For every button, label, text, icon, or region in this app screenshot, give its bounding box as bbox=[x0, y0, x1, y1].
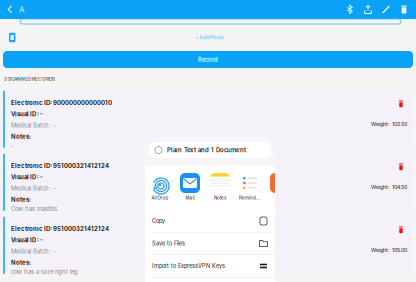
button[interactable]: Record bbox=[3, 51, 413, 68]
staticText: Notes bbox=[214, 195, 226, 200]
staticText: Plain Text and 1 Document bbox=[167, 146, 246, 154]
button[interactable]: Fr bbox=[269, 173, 291, 201]
button[interactable]: Back bbox=[0, 0, 33, 19]
staticText: Electronic ID: 951000321412124 bbox=[11, 225, 109, 232]
button[interactable]: Delete record bbox=[395, 162, 407, 172]
button[interactable]: Delete record bbox=[395, 99, 407, 109]
staticText: Electronic ID: 951000321412124 bbox=[11, 162, 109, 169]
button[interactable]: + Add Photo bbox=[192, 31, 227, 43]
staticText: AirDrop bbox=[151, 195, 168, 200]
button[interactable]: Electronic ID: 951000321412124 bbox=[3, 217, 413, 274]
staticText: Visual ID : - bbox=[11, 236, 43, 244]
button[interactable]: Delete record bbox=[395, 225, 407, 235]
staticText: Medical Batch: - bbox=[11, 185, 56, 192]
staticText: Notes: bbox=[11, 259, 31, 266]
staticText: Visual ID : - bbox=[11, 110, 43, 118]
button[interactable]: Plain Text and 1 Document bbox=[145, 142, 275, 158]
staticText: + Add Photo bbox=[195, 34, 224, 40]
staticText: Reminders bbox=[239, 195, 261, 200]
staticText: Record bbox=[198, 56, 218, 63]
button[interactable]: Edit bbox=[377, 0, 395, 19]
button[interactable]: Copy bbox=[145, 210, 275, 232]
staticText: cow has a sore right leg bbox=[11, 268, 78, 275]
button[interactable]: Bluetooth bbox=[341, 0, 359, 19]
button[interactable]: Reminders bbox=[239, 173, 261, 201]
staticText: Medical Batch: - bbox=[11, 248, 56, 255]
button[interactable]: Mail bbox=[179, 173, 201, 201]
staticText: Save to Files bbox=[152, 240, 185, 247]
staticText: A bbox=[19, 5, 25, 14]
staticText: Weight: 102.50 bbox=[371, 121, 407, 127]
staticText: Notes: bbox=[11, 196, 31, 203]
staticText: - bbox=[11, 142, 14, 149]
staticText: Medical Batch: - bbox=[11, 122, 56, 129]
staticText: Weight: 105.00 bbox=[371, 247, 407, 253]
staticText: Visual ID : - bbox=[11, 173, 43, 181]
staticText: Electronic ID: 900000000000010 bbox=[11, 99, 112, 106]
button[interactable]: Electronic ID: 951000321412124 bbox=[3, 154, 413, 211]
staticText: 3 SCANNED RECORDS bbox=[4, 76, 55, 82]
button[interactable]: Save to Files bbox=[145, 232, 275, 254]
button[interactable]: Share bbox=[359, 0, 377, 19]
staticText: Import to ExpressVPN Keys bbox=[152, 263, 225, 269]
button[interactable]: Delete bbox=[395, 0, 413, 19]
button[interactable]: Electronic ID: 900000000000010 bbox=[3, 91, 413, 148]
button[interactable]: AirDrop bbox=[149, 173, 171, 201]
staticText: Notes: bbox=[11, 133, 31, 140]
staticText: Mail bbox=[185, 195, 194, 200]
staticText: Copy bbox=[152, 218, 165, 224]
staticText: Cow has mastitis bbox=[11, 205, 57, 212]
staticText: Weight: 104.50 bbox=[371, 184, 407, 190]
button[interactable]: Notes bbox=[209, 173, 231, 201]
button[interactable]: Import to ExpressVPN Keys bbox=[145, 255, 275, 277]
